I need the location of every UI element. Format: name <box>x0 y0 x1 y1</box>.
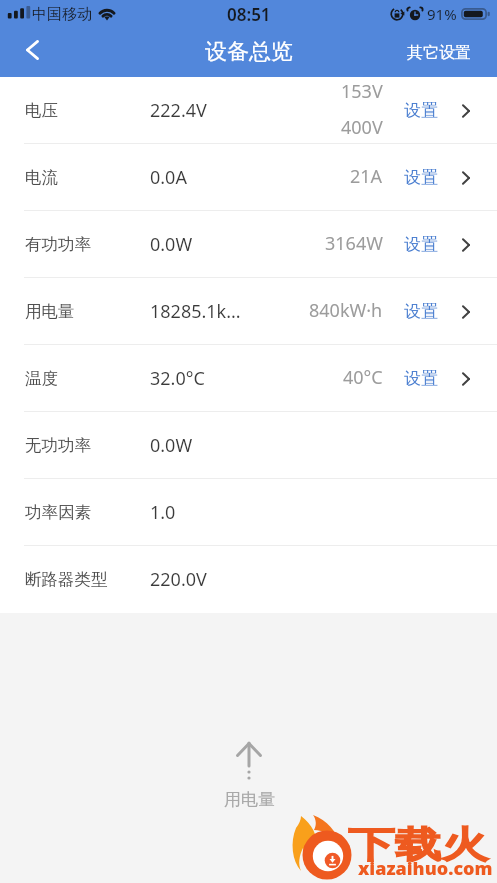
button[interactable]: 其它设置 <box>394 33 497 73</box>
button[interactable]: 电流 <box>0 144 497 211</box>
button[interactable]: 设置 <box>404 368 438 389</box>
button[interactable]: More <box>451 297 481 327</box>
staticText: 40°C <box>343 365 383 390</box>
staticText: 断路器类型 <box>25 569 108 590</box>
button[interactable]: 设置 <box>404 100 438 121</box>
button[interactable]: 设置 <box>404 234 438 255</box>
staticText: 0.0W <box>150 232 193 257</box>
button[interactable]: More <box>451 230 481 260</box>
staticText: 设置 <box>404 234 438 255</box>
staticText: 电流 <box>25 167 58 188</box>
staticText: 400V <box>341 115 383 140</box>
staticText: 有功功率 <box>25 234 91 255</box>
staticText: 无功功率 <box>25 435 91 456</box>
button[interactable]: 设置 <box>404 301 438 322</box>
staticText: 设备总览 <box>205 38 293 66</box>
staticText: 0.0W <box>150 433 193 458</box>
staticText: 08:51 <box>227 3 271 26</box>
button[interactable]: More <box>451 96 481 126</box>
staticText: 用电量 <box>25 301 75 322</box>
button[interactable]: 功率因素 <box>0 479 497 546</box>
staticText: 设置 <box>404 100 438 121</box>
button[interactable]: Back <box>8 26 56 74</box>
staticText: 153V <box>341 79 383 104</box>
button[interactable]: 电压 <box>0 77 497 144</box>
button[interactable]: 温度 <box>0 345 497 412</box>
button[interactable]: 有功功率 <box>0 211 497 278</box>
staticText: 222.4V <box>150 98 207 123</box>
staticText: 下载火 <box>348 822 488 867</box>
button[interactable]: 无功功率 <box>0 412 497 479</box>
button[interactable]: 用电量 <box>0 278 497 345</box>
staticText: 温度 <box>25 368 58 389</box>
staticText: 功率因素 <box>25 502 91 523</box>
button[interactable]: 设置 <box>404 167 438 188</box>
staticText: 18285.1k... <box>150 299 241 324</box>
staticText: 0.0A <box>150 165 187 190</box>
staticText: 3164W <box>325 231 383 256</box>
staticText: 用电量 <box>224 789 275 810</box>
staticText: 21A <box>350 164 383 189</box>
staticText: 中国移动 <box>32 5 92 24</box>
staticText: 840kW·h <box>309 298 383 323</box>
staticText: 91% <box>427 4 457 24</box>
staticText: 电压 <box>25 100 58 121</box>
button[interactable]: More <box>451 364 481 394</box>
button[interactable]: More <box>451 163 481 193</box>
staticText: 220.0V <box>150 567 207 592</box>
staticText: xiazaihuo.com <box>358 856 493 881</box>
button[interactable]: 断路器类型 <box>0 546 497 613</box>
staticText: 1.0 <box>150 500 176 525</box>
staticText: 设置 <box>404 368 438 389</box>
staticText: 设置 <box>404 301 438 322</box>
staticText: 32.0°C <box>150 366 205 391</box>
staticText: 设置 <box>404 167 438 188</box>
staticText: 其它设置 <box>407 43 471 63</box>
